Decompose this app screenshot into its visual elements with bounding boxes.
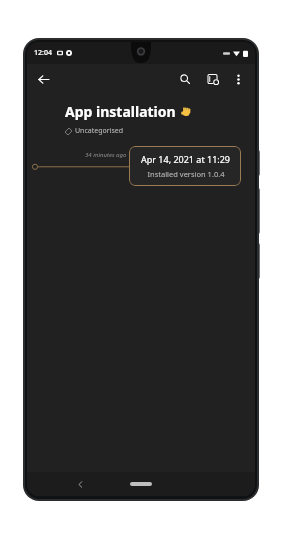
button[interactable]: Back	[31, 67, 55, 91]
staticText: Apr 14, 2021 at 11:29	[141, 153, 230, 165]
button[interactable]: Search	[173, 67, 197, 91]
button[interactable]: Back	[71, 475, 89, 493]
staticText: Installed version 1.0.4	[147, 169, 225, 179]
button[interactable]: Home	[128, 477, 154, 491]
button[interactable]: Apr 14, 2021 at 11:29	[129, 146, 241, 186]
staticText: App installation	[65, 102, 176, 121]
staticText: 34 minutes ago	[85, 151, 127, 159]
button[interactable]: More options	[227, 67, 249, 91]
staticText: 12:04	[34, 48, 52, 58]
staticText: Uncategorised	[75, 126, 124, 136]
button[interactable]: Media	[201, 67, 225, 91]
